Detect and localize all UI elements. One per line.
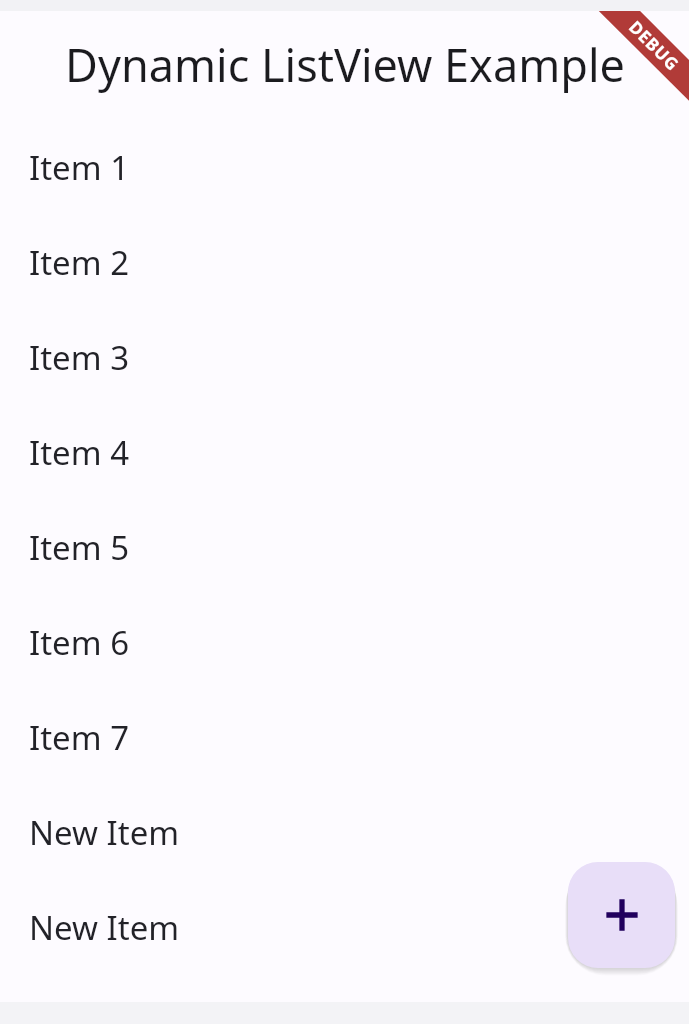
button[interactable]: Item 3 [0, 310, 689, 405]
staticText: Item 6 [29, 620, 130, 665]
staticText: New Item [29, 905, 180, 950]
staticText: Item 7 [29, 715, 130, 760]
button[interactable]: Item 5 [0, 500, 689, 595]
staticText: Item 5 [29, 525, 130, 570]
button[interactable]: New Item [0, 785, 689, 880]
staticText: Dynamic ListView Example [65, 34, 625, 95]
button[interactable]: Item 7 [0, 690, 689, 785]
button[interactable]: Item 2 [0, 215, 689, 310]
button[interactable]: Item 4 [0, 405, 689, 500]
staticText: Item 2 [29, 240, 130, 285]
button[interactable]: Add item [568, 862, 675, 968]
button[interactable]: New Item [0, 880, 689, 975]
staticText: Item 3 [29, 335, 130, 380]
staticText: New Item [29, 810, 180, 855]
button[interactable]: Item 6 [0, 595, 689, 690]
staticText: Item 1 [29, 145, 130, 190]
button[interactable]: Item 1 [0, 120, 689, 215]
staticText: Item 4 [29, 430, 130, 475]
